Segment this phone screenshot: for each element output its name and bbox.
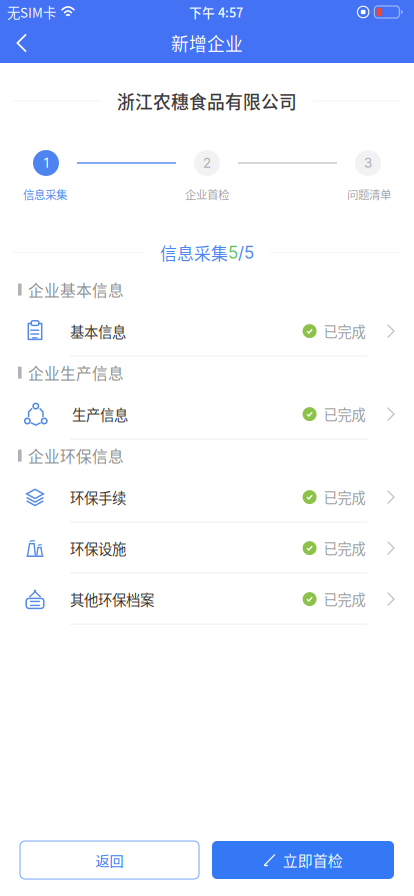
staticText: 信息采集 [23,186,67,203]
button[interactable]: 环保手续 [0,472,414,523]
staticText: 浙江农穗食品有限公司 [117,88,297,114]
button[interactable]: 返回 [20,841,199,879]
staticText: 返回 [95,850,123,870]
staticText: 3 [364,155,372,171]
staticText: 无SIM卡 [7,2,56,22]
staticText: 环保手续 [70,487,126,508]
staticText: 基本信息 [70,321,126,342]
staticText: 2 [203,155,211,171]
button[interactable]: 生产信息 [0,389,414,440]
staticText: 环保设施 [70,538,126,559]
button[interactable]: 返回 [0,24,54,62]
staticText: /5 [238,242,254,263]
staticText: 企业首检 [185,186,229,203]
staticText: 5 [228,242,238,263]
button[interactable]: 立即首检 [212,841,394,879]
staticText: 已完成 [324,589,366,609]
staticText: 已完成 [324,538,366,558]
staticText: 新增企业 [171,30,243,56]
button[interactable]: 基本信息 [0,306,414,357]
staticText: 问题清单 [347,186,391,203]
staticText: 1 [43,155,48,171]
staticText: 企业基本信息 [28,278,124,301]
button[interactable]: 环保设施 [0,523,414,574]
staticText: 企业环保信息 [28,444,124,467]
staticText: 企业生产信息 [28,361,124,384]
staticText: 已完成 [324,404,366,424]
staticText: 已完成 [324,321,366,341]
staticText: 已完成 [324,487,366,507]
staticText: 其他环保档案 [70,589,154,610]
staticText: 信息采集 [160,240,228,265]
staticText: 生产信息 [72,404,128,425]
button[interactable]: 其他环保档案 [0,574,414,625]
staticText: 下午 4:57 [189,3,243,21]
staticText: 立即首检 [283,849,343,871]
